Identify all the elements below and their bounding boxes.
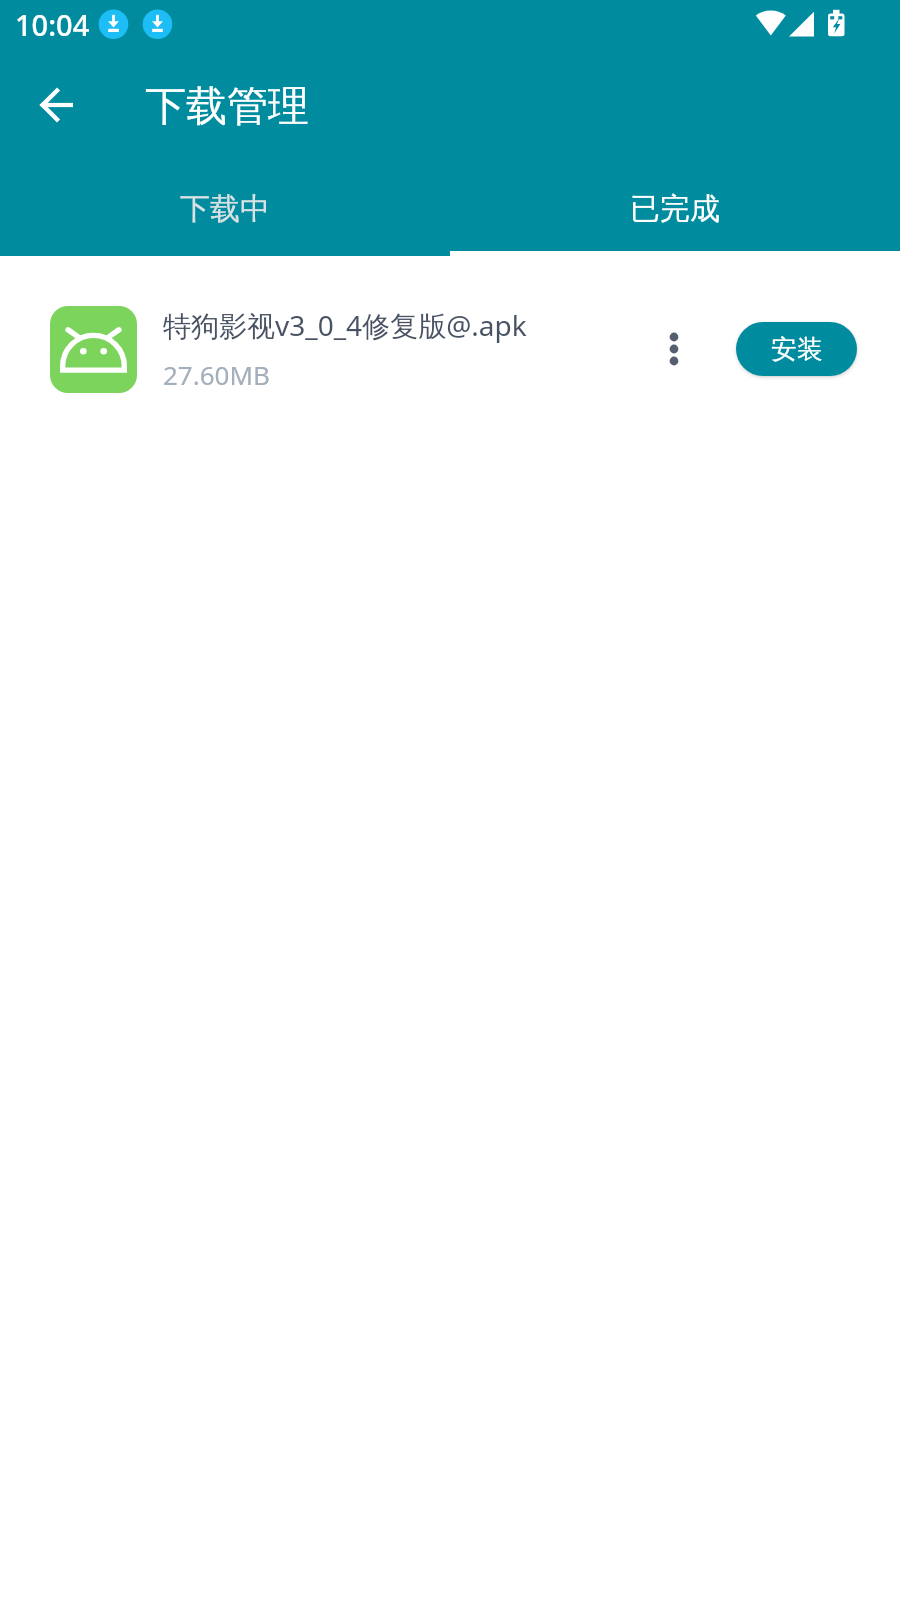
staticText: 下载中: [180, 190, 270, 228]
staticText: 10:04: [15, 5, 90, 44]
staticText: 特狗影视v3_0_4修复版@.apk: [163, 306, 527, 344]
button[interactable]: 下载中: [0, 160, 450, 251]
staticText: 安装: [771, 333, 823, 366]
button[interactable]: More options: [641, 316, 707, 382]
button[interactable]: Back: [24, 72, 90, 138]
staticText: 下载管理: [145, 81, 309, 133]
button[interactable]: 安装: [736, 322, 857, 376]
staticText: 27.60MB: [163, 357, 270, 392]
staticText: 已完成: [630, 190, 720, 228]
button[interactable]: 已完成: [450, 160, 900, 251]
button[interactable]: 特狗影视v3_0_4修复版@.apk: [0, 284, 900, 414]
